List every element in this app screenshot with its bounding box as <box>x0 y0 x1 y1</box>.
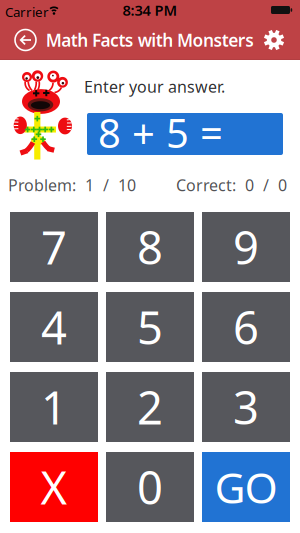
button[interactable]: 5 <box>106 292 194 362</box>
staticText: 0 <box>245 174 254 196</box>
staticText: Problem: <box>8 174 76 196</box>
staticText: 9 <box>233 217 259 277</box>
staticText: Carrier <box>5 3 49 21</box>
staticText: X <box>40 457 67 517</box>
staticText: / <box>263 174 269 196</box>
staticText: 1 <box>41 377 67 437</box>
button[interactable]: X <box>10 452 98 522</box>
staticText: 4 <box>41 297 67 357</box>
button[interactable]: Settings <box>262 28 286 52</box>
staticText: 2 <box>137 377 163 437</box>
staticText: Math Facts with Monsters <box>46 28 254 51</box>
button[interactable]: 4 <box>10 292 98 362</box>
staticText: 1 <box>85 174 94 196</box>
button[interactable]: 9 <box>202 212 290 282</box>
button[interactable]: 3 <box>202 372 290 442</box>
button[interactable]: 1 <box>10 372 98 442</box>
button[interactable]: 2 <box>106 372 194 442</box>
button[interactable]: 7 <box>10 212 98 282</box>
button[interactable]: 6 <box>202 292 290 362</box>
staticText: 0 <box>278 174 287 196</box>
button[interactable]: Back <box>12 27 38 53</box>
staticText: 3 <box>233 377 259 437</box>
staticText: 8:34 PM <box>122 0 177 20</box>
staticText: 8 <box>98 106 121 159</box>
staticText: 5 <box>166 106 189 159</box>
staticText: + <box>132 106 155 159</box>
staticText: 0 <box>137 457 163 517</box>
staticText: = <box>200 106 223 159</box>
button[interactable]: GO <box>202 452 290 522</box>
staticText: 6 <box>233 297 259 357</box>
staticText: 10 <box>118 174 136 196</box>
staticText: Enter your answer. <box>84 76 225 97</box>
staticText: Correct: <box>176 174 236 196</box>
button[interactable]: 8 <box>106 212 194 282</box>
staticText: 8 <box>137 217 163 277</box>
button[interactable]: 0 <box>106 452 194 522</box>
staticText: / <box>103 174 109 196</box>
staticText: 5 <box>137 297 163 357</box>
staticText: 7 <box>41 217 67 277</box>
staticText: GO <box>214 459 278 515</box>
